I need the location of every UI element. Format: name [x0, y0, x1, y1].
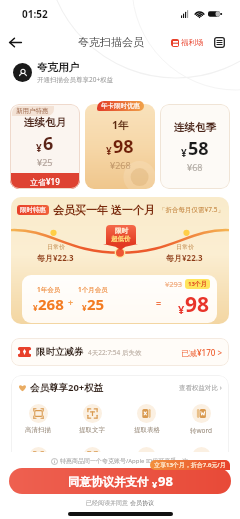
staticText: 限时: [115, 227, 128, 235]
staticText: 日常价: [47, 243, 65, 251]
staticText: 「折合每月仅需¥7.5」: [159, 205, 224, 214]
staticText: 开通扫描会员尊享20+权益: [37, 75, 114, 84]
button[interactable]: 转PPT: [11, 447, 65, 478]
staticText: 拍照翻译: [189, 469, 215, 477]
staticText: 同意协议并支付: [68, 474, 152, 490]
button[interactable]: 图片转PDF: [65, 447, 119, 478]
staticText: 98: [185, 290, 210, 319]
button[interactable]: 证件照: [119, 447, 174, 477]
staticText: 58: [188, 136, 209, 161]
button[interactable]: 1年: [85, 104, 155, 189]
button[interactable]: 拍照翻译: [174, 447, 229, 477]
staticText: 夸克用户: [37, 61, 79, 74]
button[interactable]: 提取文字: [65, 404, 119, 434]
staticText: ¥268: [110, 159, 131, 171]
staticText: 268: [38, 294, 64, 314]
staticText: 1个月会员: [78, 285, 108, 294]
staticText: 高清扫描: [25, 426, 51, 434]
staticText: ¥68: [187, 161, 203, 173]
button[interactable]: 连续包季: [160, 104, 230, 189]
staticText: 证件照: [137, 469, 157, 477]
button[interactable]: My orders: [212, 35, 227, 50]
staticText: 立省¥19: [30, 176, 60, 187]
staticText: ¥25: [37, 156, 53, 168]
staticText: 每月¥22.3: [37, 252, 74, 263]
staticText: 提取表格: [134, 426, 160, 434]
button[interactable]: 福利场: [171, 38, 204, 47]
staticText: 特惠商品同一个夸克账号/Apple ID仅可享受一次: [60, 457, 189, 465]
button[interactable]: 限时特惠: [11, 197, 229, 324]
button[interactable]: 提取表格: [119, 404, 174, 434]
staticText: 转word: [190, 426, 213, 435]
staticText: ¥: [178, 302, 185, 317]
staticText: 98: [113, 134, 134, 159]
button[interactable]: 转word: [174, 404, 229, 435]
staticText: 限时特惠: [20, 206, 46, 214]
staticText: 每月¥22.3: [166, 252, 203, 263]
staticText: 98: [158, 472, 173, 490]
staticText: 超低价: [111, 235, 131, 243]
button[interactable]: Back: [4, 31, 26, 53]
staticText: 图片转PDF: [76, 469, 108, 478]
staticText: 已经阅读并同意: [86, 499, 130, 507]
staticText: 新用户特惠: [16, 107, 49, 115]
button[interactable]: 同意协议并支付: [9, 468, 231, 494]
staticText: ¥: [82, 302, 87, 313]
staticText: 会员尊享20+权益: [30, 381, 104, 394]
staticText: 福利场: [181, 38, 204, 47]
staticText: 限时立减券: [36, 346, 84, 358]
staticText: 25: [87, 294, 105, 314]
staticText: 13个月: [188, 280, 207, 288]
staticText: ¥: [106, 144, 112, 158]
staticText: 会员买一年 送一个月: [53, 202, 155, 217]
staticText: ¥: [152, 478, 158, 490]
staticText: ¥: [181, 146, 187, 160]
staticText: 6: [43, 131, 54, 156]
staticText: +: [68, 296, 74, 308]
staticText: 会员协议: [130, 499, 154, 507]
staticText: 4天22:7:54 后失效: [88, 348, 142, 357]
staticText: =: [156, 297, 162, 309]
staticText: 查看权益对比 ›: [179, 383, 222, 392]
staticText: 连续包月: [24, 116, 66, 129]
staticText: 夸克扫描会员: [78, 35, 144, 49]
button[interactable]: 连续包月: [10, 104, 80, 189]
staticText: 1年: [112, 118, 129, 132]
staticText: 01:52: [22, 7, 48, 21]
staticText: 1年会员: [37, 285, 61, 294]
button[interactable]: 高清扫描: [11, 404, 65, 434]
staticText: 连续包季: [174, 121, 216, 134]
staticText: 日常价: [176, 243, 194, 251]
staticText: ¥293: [165, 279, 183, 289]
staticText: ¥: [33, 302, 38, 313]
staticText: 立享13个月，折合7.6元/月: [154, 461, 226, 469]
staticText: 已减¥170 >: [181, 347, 222, 358]
button[interactable]: 限时立减券: [11, 338, 229, 366]
staticText: 年卡限时优惠: [101, 102, 140, 110]
staticText: 提取文字: [79, 426, 105, 434]
staticText: ¥: [36, 141, 42, 155]
